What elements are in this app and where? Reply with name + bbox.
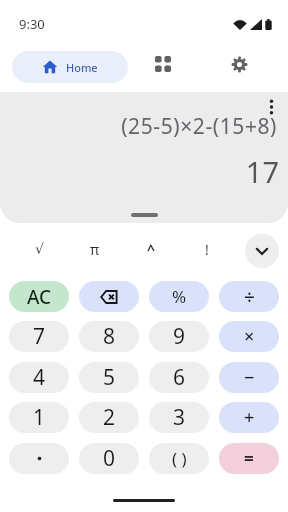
staticText: ! (205, 240, 209, 259)
button[interactable]: 6 (149, 362, 209, 393)
staticText: 9:30 (19, 15, 45, 33)
staticText: AC (27, 284, 52, 310)
button[interactable]: 7 (9, 321, 69, 352)
staticText: 17 (0, 152, 279, 191)
button[interactable] (147, 48, 179, 80)
button[interactable]: 1 (9, 402, 69, 433)
button[interactable]: 9 (149, 321, 209, 352)
staticText: ( ) (172, 447, 187, 470)
button[interactable]: 5 (79, 362, 139, 393)
button[interactable] (258, 94, 284, 120)
button[interactable]: √ (23, 233, 55, 265)
button[interactable] (79, 281, 139, 312)
button[interactable]: Home (12, 51, 128, 83)
staticText: (25-5)×2-(15+8) (0, 112, 277, 141)
button[interactable]: 3 (149, 402, 209, 433)
button[interactable] (245, 234, 279, 268)
staticText: Home (66, 60, 98, 75)
staticText: π (90, 240, 100, 259)
staticText: 8 (103, 322, 116, 351)
button[interactable]: π (79, 233, 111, 265)
button[interactable]: + (219, 402, 279, 433)
staticText: 2 (103, 403, 116, 432)
staticText: 0 (103, 444, 116, 473)
staticText: 3 (173, 403, 186, 432)
staticText: √ (35, 241, 44, 257)
staticText: 9 (173, 322, 186, 351)
button[interactable] (223, 48, 255, 80)
staticText: 6 (173, 363, 186, 392)
staticText: − (244, 365, 255, 390)
button[interactable]: × (219, 321, 279, 352)
staticText: ^ (147, 240, 156, 259)
button[interactable]: 2 (79, 402, 139, 433)
staticText: 1 (33, 403, 46, 432)
button[interactable]: ( ) (149, 443, 209, 474)
staticText: 4 (33, 363, 46, 392)
button[interactable]: % (149, 281, 209, 312)
button[interactable]: 4 (9, 362, 69, 393)
staticText: = (244, 447, 254, 470)
staticText: 5 (103, 363, 116, 392)
button[interactable]: ÷ (219, 281, 279, 312)
button[interactable]: AC (9, 281, 69, 312)
staticText: 7 (33, 322, 46, 351)
button[interactable] (9, 443, 69, 474)
staticText: × (244, 324, 255, 349)
staticText: + (244, 405, 255, 430)
button[interactable]: 8 (79, 321, 139, 352)
button[interactable]: 0 (79, 443, 139, 474)
button[interactable]: ! (191, 233, 223, 265)
button[interactable]: ^ (135, 233, 167, 265)
staticText: % (172, 285, 187, 308)
button[interactable]: − (219, 362, 279, 393)
staticText: ÷ (244, 284, 255, 310)
button[interactable]: = (219, 443, 279, 474)
